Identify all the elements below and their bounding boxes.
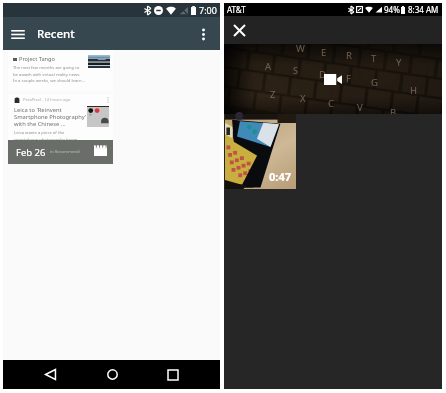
button[interactable]: More options <box>191 22 215 46</box>
staticText: Project Tango <box>19 55 55 63</box>
staticText: 0:47 <box>269 169 291 184</box>
staticText: AT&T <box>227 4 246 15</box>
staticText: Leica wants a piece of the smartphone ph… <box>14 130 83 148</box>
staticText: E <box>321 46 327 59</box>
staticText: V <box>357 101 363 114</box>
staticText: The next few months are going to be awas… <box>13 65 85 83</box>
button[interactable]: PetaPixel - 14 hours ago <box>8 94 113 164</box>
staticText: W <box>296 44 305 55</box>
staticText: F <box>346 72 351 85</box>
staticText: Feb 26 <box>16 146 46 159</box>
button[interactable]: Back <box>35 360 65 389</box>
staticText: Leica to 'Reinvent Smartphone Photograph… <box>14 106 86 128</box>
button[interactable]: Feb 26 <box>8 140 113 164</box>
staticText: PetaPixel - 14 hours ago <box>23 97 71 103</box>
button[interactable]: Close <box>229 20 249 40</box>
staticText: D <box>319 68 326 81</box>
button[interactable]: Open navigation drawer <box>8 24 28 44</box>
staticText: T <box>371 52 377 65</box>
staticText: G <box>371 76 378 89</box>
staticText: B <box>390 106 397 114</box>
staticText: 8:34 AM <box>408 4 439 15</box>
button[interactable]: Recents <box>158 360 188 389</box>
staticText: 94% <box>384 4 400 15</box>
staticText: Y <box>396 56 402 69</box>
button[interactable]: Home <box>97 360 127 389</box>
staticText: S <box>293 64 299 77</box>
staticText: H <box>410 84 418 97</box>
staticText: Recent <box>37 26 75 42</box>
staticText: in Recommend <box>50 149 80 155</box>
button[interactable]: 0:47 <box>225 114 296 189</box>
staticText: A <box>265 60 272 73</box>
staticText: 7:00 <box>199 4 217 16</box>
staticText: R <box>346 49 352 62</box>
staticText: C <box>328 97 335 110</box>
button[interactable]: Project Tango <box>8 51 113 91</box>
staticText: Z <box>270 88 276 101</box>
button[interactable]: Record video <box>322 72 344 87</box>
staticText: X <box>300 92 306 105</box>
